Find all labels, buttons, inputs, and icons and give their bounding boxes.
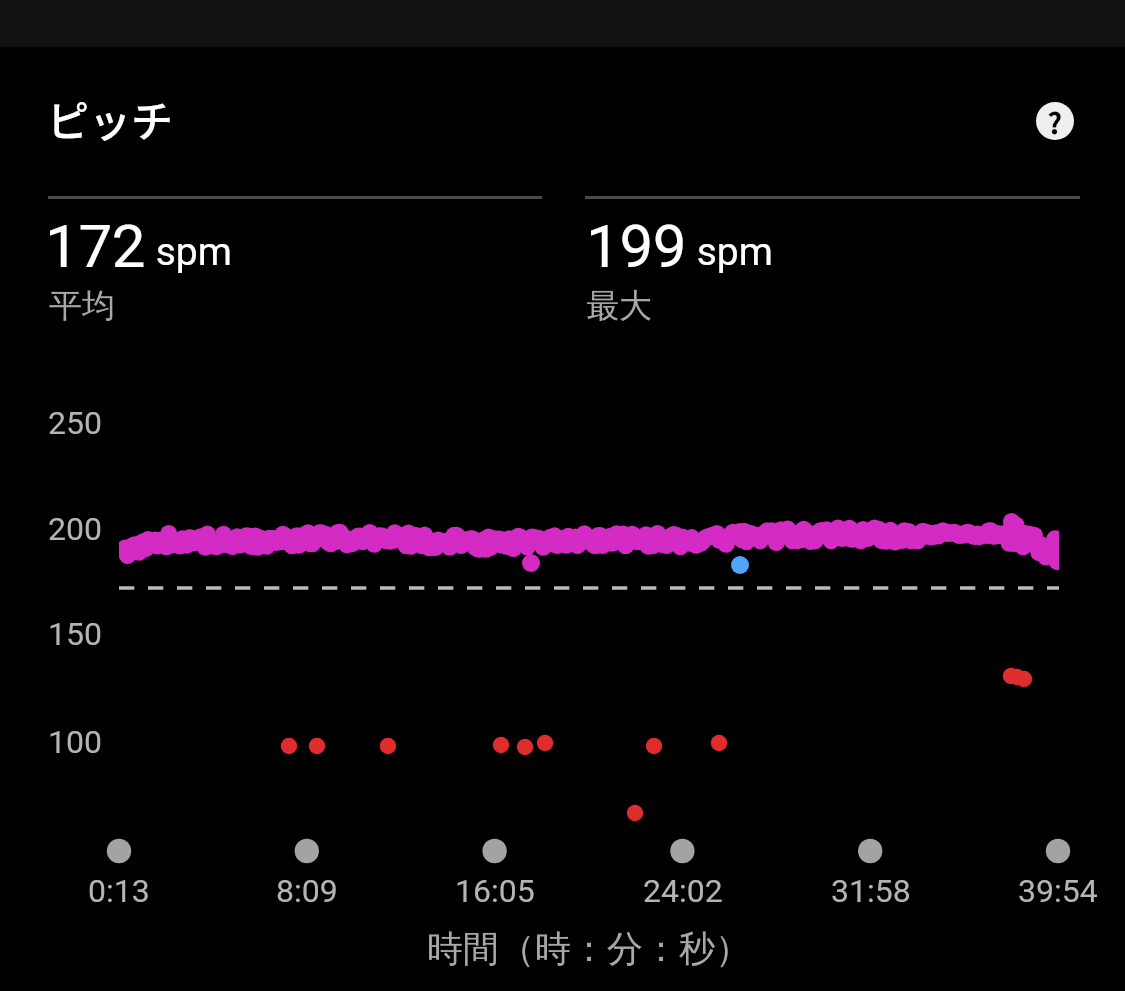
staticText: 時間（時：分：秒） [427, 926, 751, 971]
staticText: 39:54 [1018, 872, 1098, 910]
staticText: ピッチ [47, 88, 174, 149]
staticText: 16:05 [455, 872, 535, 910]
button[interactable]: ピッチ [47, 88, 174, 149]
staticText: 199 [586, 211, 687, 281]
staticText: 31:58 [831, 872, 911, 910]
staticText: 8:09 [276, 872, 338, 910]
staticText: 200 [48, 510, 102, 548]
staticText: 172 [45, 211, 146, 281]
staticText: ? [1048, 102, 1062, 140]
staticText: spm [687, 229, 773, 275]
staticText: 24:02 [643, 872, 723, 910]
staticText: 0:13 [88, 872, 150, 910]
button[interactable]: ヘルプ [1036, 102, 1074, 140]
staticText: 250 [48, 404, 102, 442]
staticText: spm [146, 229, 232, 275]
staticText: 平均 [49, 285, 115, 327]
staticText: 最大 [586, 285, 652, 327]
staticText: 100 [48, 723, 102, 761]
staticText: 150 [48, 615, 102, 653]
